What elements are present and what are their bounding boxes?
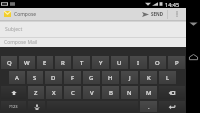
staticText: X [52,89,56,97]
button[interactable]: A [9,71,25,84]
staticText: ?123 [9,104,18,109]
staticText: O [155,59,160,67]
staticText: N [127,89,132,97]
staticText: J [129,74,131,82]
staticText: S [33,74,37,82]
staticText: H [108,74,113,82]
button[interactable]: Home [186,51,200,62]
button[interactable]: Enter [159,101,185,112]
staticText: U [117,59,122,67]
button[interactable]: Back [186,17,200,28]
button[interactable]: More options [168,8,186,20]
button[interactable]: Shift [1,86,26,99]
button[interactable]: Compose Mail [0,38,186,47]
button[interactable]: N [121,86,138,99]
staticText: A [15,74,19,82]
staticText: F [71,74,75,82]
staticText: B [109,89,113,97]
button[interactable]: C [64,86,81,99]
button[interactable]: M [140,86,157,99]
staticText: SEND [151,11,163,17]
button[interactable]: ?123 [1,101,26,112]
button[interactable]: Subject [0,22,186,37]
staticText: Compose [14,11,37,18]
staticText: I [137,59,140,67]
button[interactable]: B [102,86,119,99]
button[interactable]: O [149,56,166,69]
button[interactable]: Voice input [28,101,45,112]
staticText: D [51,74,56,82]
button[interactable]: Z [28,86,44,99]
staticText: P [175,59,179,67]
staticText: G [89,74,94,82]
button[interactable]: SEND [138,8,167,20]
staticText: R [61,59,65,67]
button[interactable]: G [83,71,100,84]
button[interactable]: P [168,56,185,69]
button[interactable]: L [159,71,176,84]
button[interactable]: T [73,56,90,69]
staticText: . [148,103,150,111]
button[interactable]: Q [1,56,17,69]
button[interactable]: E [37,56,53,69]
button[interactable]: F [64,71,81,84]
button[interactable]: Y [92,56,109,69]
staticText: Compose Mail [4,39,38,46]
staticText: Q [7,59,12,67]
button[interactable]: J [121,71,138,84]
staticText: M [146,89,152,97]
staticText: Y [99,59,103,67]
button[interactable]: D [45,71,62,84]
button[interactable]: S [27,71,43,84]
staticText: V [90,89,94,97]
button[interactable]: X [46,86,62,99]
button[interactable]: W [19,56,35,69]
staticText: C [71,89,75,97]
button[interactable]: . [140,101,157,112]
staticText: Subject [5,26,23,33]
button[interactable]: H [102,71,119,84]
staticText: W [24,59,30,67]
button[interactable] [47,101,138,112]
staticText: Z [34,89,38,97]
button[interactable]: Backspace [159,86,185,99]
button[interactable]: V [83,86,100,99]
button[interactable]: I [130,56,147,69]
staticText: E [43,59,47,67]
staticText: K [147,74,151,82]
button[interactable]: U [111,56,128,69]
staticText: 14:45 [165,1,180,8]
button[interactable]: R [55,56,71,69]
button[interactable]: K [140,71,157,84]
staticText: T [80,59,84,67]
staticText: L [166,74,170,82]
